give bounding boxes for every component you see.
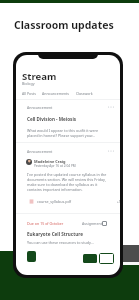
staticText: +1 bbox=[117, 200, 120, 204]
button[interactable]: Due on 15 of October bbox=[16, 215, 120, 275]
button[interactable]: More options bbox=[107, 105, 115, 109]
staticText: Stream bbox=[22, 70, 57, 83]
staticText: Announcements bbox=[42, 91, 70, 96]
staticText: Classwork bbox=[76, 91, 93, 96]
staticText: All Posts bbox=[22, 91, 36, 96]
staticText: Eukaryote Cell Structure bbox=[27, 231, 83, 237]
button[interactable]: Announcement bbox=[16, 144, 120, 210]
button[interactable]: Download on the App Store bbox=[99, 253, 114, 264]
button[interactable]: Announcement bbox=[16, 100, 120, 142]
staticText: Madeleine Craig bbox=[34, 159, 66, 164]
staticText: Cell Division - Meiosis bbox=[27, 116, 77, 122]
staticText: What would I appear to this outfit it we… bbox=[27, 128, 108, 138]
button[interactable]: Classwork bbox=[76, 91, 93, 96]
staticText: Biology bbox=[22, 81, 35, 86]
staticText: I've posted the updated course syllabus … bbox=[27, 172, 108, 192]
button[interactable]: All Posts bbox=[22, 91, 36, 96]
staticText: Yesterday Apr 16 at 2:04 PM bbox=[34, 164, 76, 168]
staticText: Due on 15 of October bbox=[27, 221, 64, 226]
button[interactable]: Get it on Google Play bbox=[83, 254, 97, 263]
button[interactable]: More options bbox=[107, 149, 115, 153]
staticText: course_syllabus.pdf bbox=[37, 199, 72, 204]
staticText: Classroom updates bbox=[14, 18, 114, 32]
staticText: You can use these resources to study... bbox=[27, 240, 94, 245]
staticText: Assignment bbox=[82, 221, 103, 226]
staticText: Announcement bbox=[27, 105, 53, 110]
staticText: Announcement bbox=[27, 149, 53, 154]
button[interactable]: Announcements bbox=[42, 91, 70, 96]
button[interactable]: Attachment bbox=[27, 251, 36, 262]
